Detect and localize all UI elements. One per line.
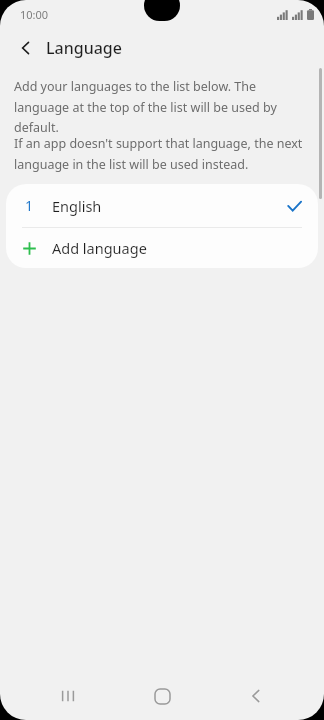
staticText: Language: [46, 37, 122, 59]
button[interactable]: Home: [136, 672, 188, 720]
button[interactable]: 1: [6, 184, 318, 227]
staticText: 10:00: [20, 7, 49, 22]
staticText: 1: [25, 196, 34, 215]
button[interactable]: Back: [230, 672, 282, 720]
staticText: Add your languages to the list below. Th…: [14, 78, 306, 135]
button[interactable]: Recent apps: [42, 672, 94, 720]
staticText: If an app doesn't support that language,…: [14, 135, 306, 172]
button[interactable]: Add language: [6, 228, 318, 268]
staticText: English: [52, 196, 102, 216]
staticText: Add language: [52, 238, 147, 258]
button[interactable]: Back: [10, 32, 42, 64]
